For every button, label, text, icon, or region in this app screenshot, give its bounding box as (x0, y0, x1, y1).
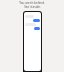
button[interactable] (33, 19, 40, 22)
staticText: See it aside. (24, 5, 41, 9)
button[interactable] (25, 15, 34, 18)
button[interactable] (34, 27, 40, 30)
staticText: You aren't behind. (19, 1, 45, 5)
